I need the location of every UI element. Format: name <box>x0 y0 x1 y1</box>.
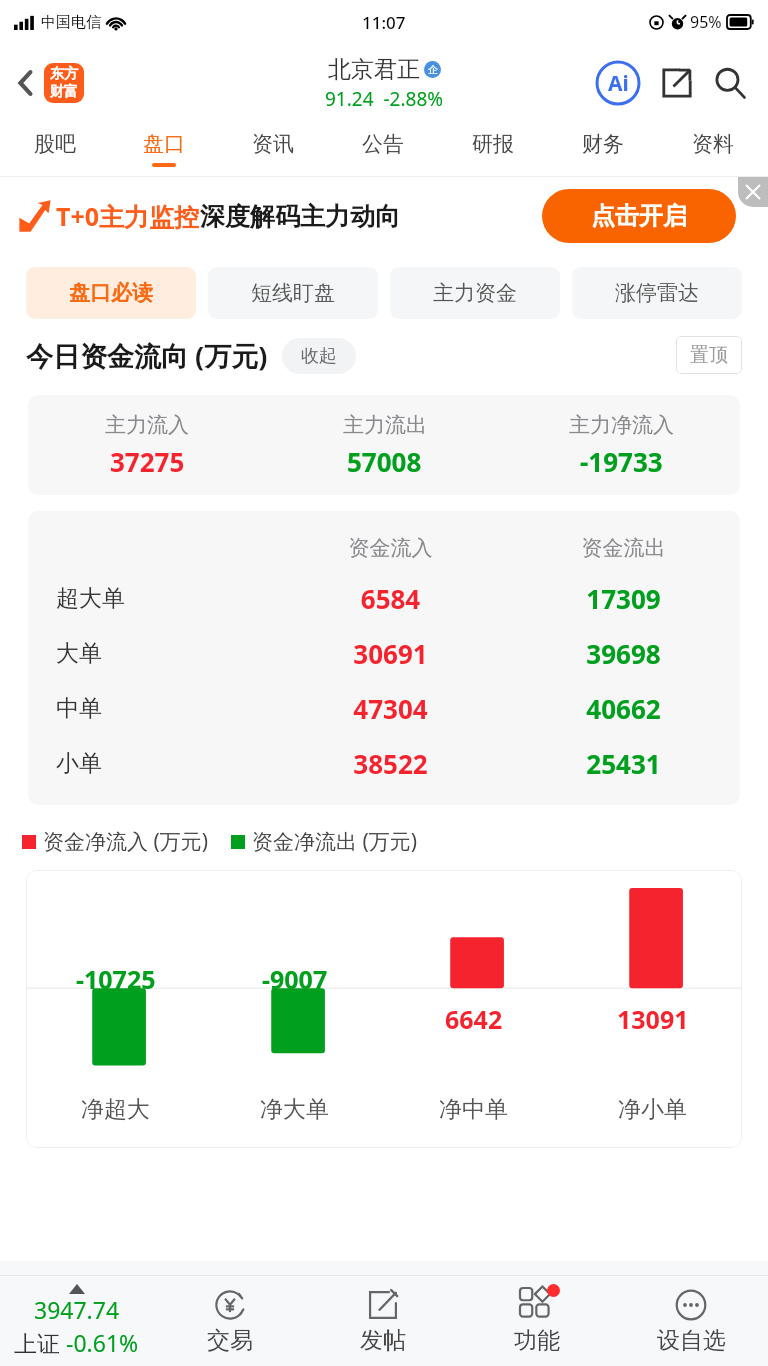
button[interactable]: 主力资金 <box>390 267 560 319</box>
staticText: 6642 <box>445 1002 503 1036</box>
button[interactable]: Search <box>708 61 752 105</box>
staticText: 财务 <box>582 131 624 157</box>
staticText: 3947.74 <box>34 1294 120 1325</box>
button[interactable]: 主力流入 <box>28 395 740 495</box>
button[interactable]: 发帖 <box>306 1276 460 1366</box>
staticText: 点击开启 <box>591 201 687 231</box>
staticText: 研报 <box>472 131 514 157</box>
staticText: 39698 <box>507 636 740 671</box>
staticText: 资金流出 <box>507 535 740 561</box>
staticText: 净小单 <box>618 1095 687 1124</box>
staticText: 47304 <box>274 691 507 726</box>
button[interactable]: 资讯 <box>218 122 328 176</box>
button[interactable]: 功能 <box>460 1276 614 1366</box>
button[interactable]: 资料 <box>658 122 768 176</box>
staticText: 上证 <box>14 1327 66 1358</box>
staticText: 企 <box>428 63 438 76</box>
staticText: 股吧 <box>34 131 76 157</box>
staticText: 超大单 <box>56 584 125 613</box>
button[interactable]: AI assistant <box>594 59 642 107</box>
staticText: 主力资金 <box>433 280 517 306</box>
staticText: 6584 <box>274 581 507 616</box>
staticText: 公告 <box>362 131 404 157</box>
staticText: 资讯 <box>252 131 294 157</box>
button[interactable]: Share <box>656 62 698 104</box>
staticText: 30691 <box>274 636 507 671</box>
staticText: 盘口必读 <box>69 280 153 306</box>
button[interactable]: 盘口必读 <box>26 267 196 319</box>
staticText: 盘口 <box>143 131 185 157</box>
staticText: 主力流出 <box>343 412 427 438</box>
staticText: 净超大 <box>81 1095 150 1124</box>
staticText: 净中单 <box>439 1095 508 1124</box>
staticText: 东方 <box>50 65 78 83</box>
staticText: 交易 <box>207 1326 253 1355</box>
staticText: -19733 <box>580 444 663 479</box>
staticText: -9007 <box>262 962 328 996</box>
staticText: 功能 <box>514 1326 560 1355</box>
button[interactable]: 点击开启 <box>542 189 736 243</box>
button[interactable]: 设自选 <box>614 1276 768 1366</box>
button[interactable]: Close banner <box>738 177 768 207</box>
staticText: 涨停雷达 <box>615 280 699 306</box>
staticText: 资金净流出 (万元) <box>252 827 418 856</box>
button[interactable]: 交易 <box>153 1276 306 1366</box>
staticText: 大单 <box>56 639 102 668</box>
button[interactable]: 置顶 <box>676 336 742 374</box>
staticText: 资料 <box>692 131 734 157</box>
button[interactable]: 财务 <box>548 122 658 176</box>
staticText: 38522 <box>274 746 507 781</box>
button[interactable]: 研报 <box>438 122 548 176</box>
button[interactable]: 涨停雷达 <box>572 267 742 319</box>
staticText: 95% <box>690 11 722 33</box>
button[interactable]: -10725 <box>26 870 742 1148</box>
staticText: 中单 <box>56 694 102 723</box>
staticText: 17309 <box>507 581 740 616</box>
staticText: 中国电信 <box>41 13 101 32</box>
staticText: 91.24 -2.88% <box>325 86 444 112</box>
staticText: 发帖 <box>360 1326 406 1355</box>
staticText: 25431 <box>507 746 740 781</box>
staticText: 收起 <box>301 345 337 368</box>
button[interactable]: 3947.74 <box>0 1276 153 1366</box>
button[interactable]: 公告 <box>328 122 438 176</box>
staticText: 净大单 <box>260 1095 329 1124</box>
staticText: -0.61% <box>66 1327 139 1358</box>
staticText: 置顶 <box>690 343 728 367</box>
staticText: 北京君正 <box>328 55 420 84</box>
staticText: Ai <box>608 69 629 98</box>
staticText: 今日资金流向 (万元) <box>26 337 268 374</box>
staticText: 40662 <box>507 691 740 726</box>
staticText: 主力净流入 <box>569 412 674 438</box>
button[interactable]: 资金流入 <box>28 511 740 805</box>
staticText: 小单 <box>56 749 102 778</box>
staticText: 主力流入 <box>105 412 189 438</box>
button[interactable]: Back <box>8 57 92 109</box>
staticText: 资金流入 <box>274 535 507 561</box>
staticText: 11:07 <box>362 11 406 34</box>
button[interactable]: 短线盯盘 <box>208 267 378 319</box>
button[interactable]: 收起 <box>282 338 356 374</box>
staticText: 13091 <box>617 1002 689 1036</box>
staticText: 设自选 <box>657 1326 726 1355</box>
staticText: 深度解码主力动向 <box>200 201 400 232</box>
button[interactable]: 股吧 <box>0 122 109 176</box>
staticText: 资金净流入 (万元) <box>43 827 209 856</box>
staticText: T+0主力监控 <box>56 199 200 233</box>
staticText: 短线盯盘 <box>251 280 335 306</box>
staticText: -10725 <box>76 962 156 996</box>
staticText: 37275 <box>110 444 185 479</box>
staticText: 57008 <box>347 444 422 479</box>
staticText: 财富 <box>50 83 78 101</box>
button[interactable]: 盘口 <box>109 122 218 176</box>
